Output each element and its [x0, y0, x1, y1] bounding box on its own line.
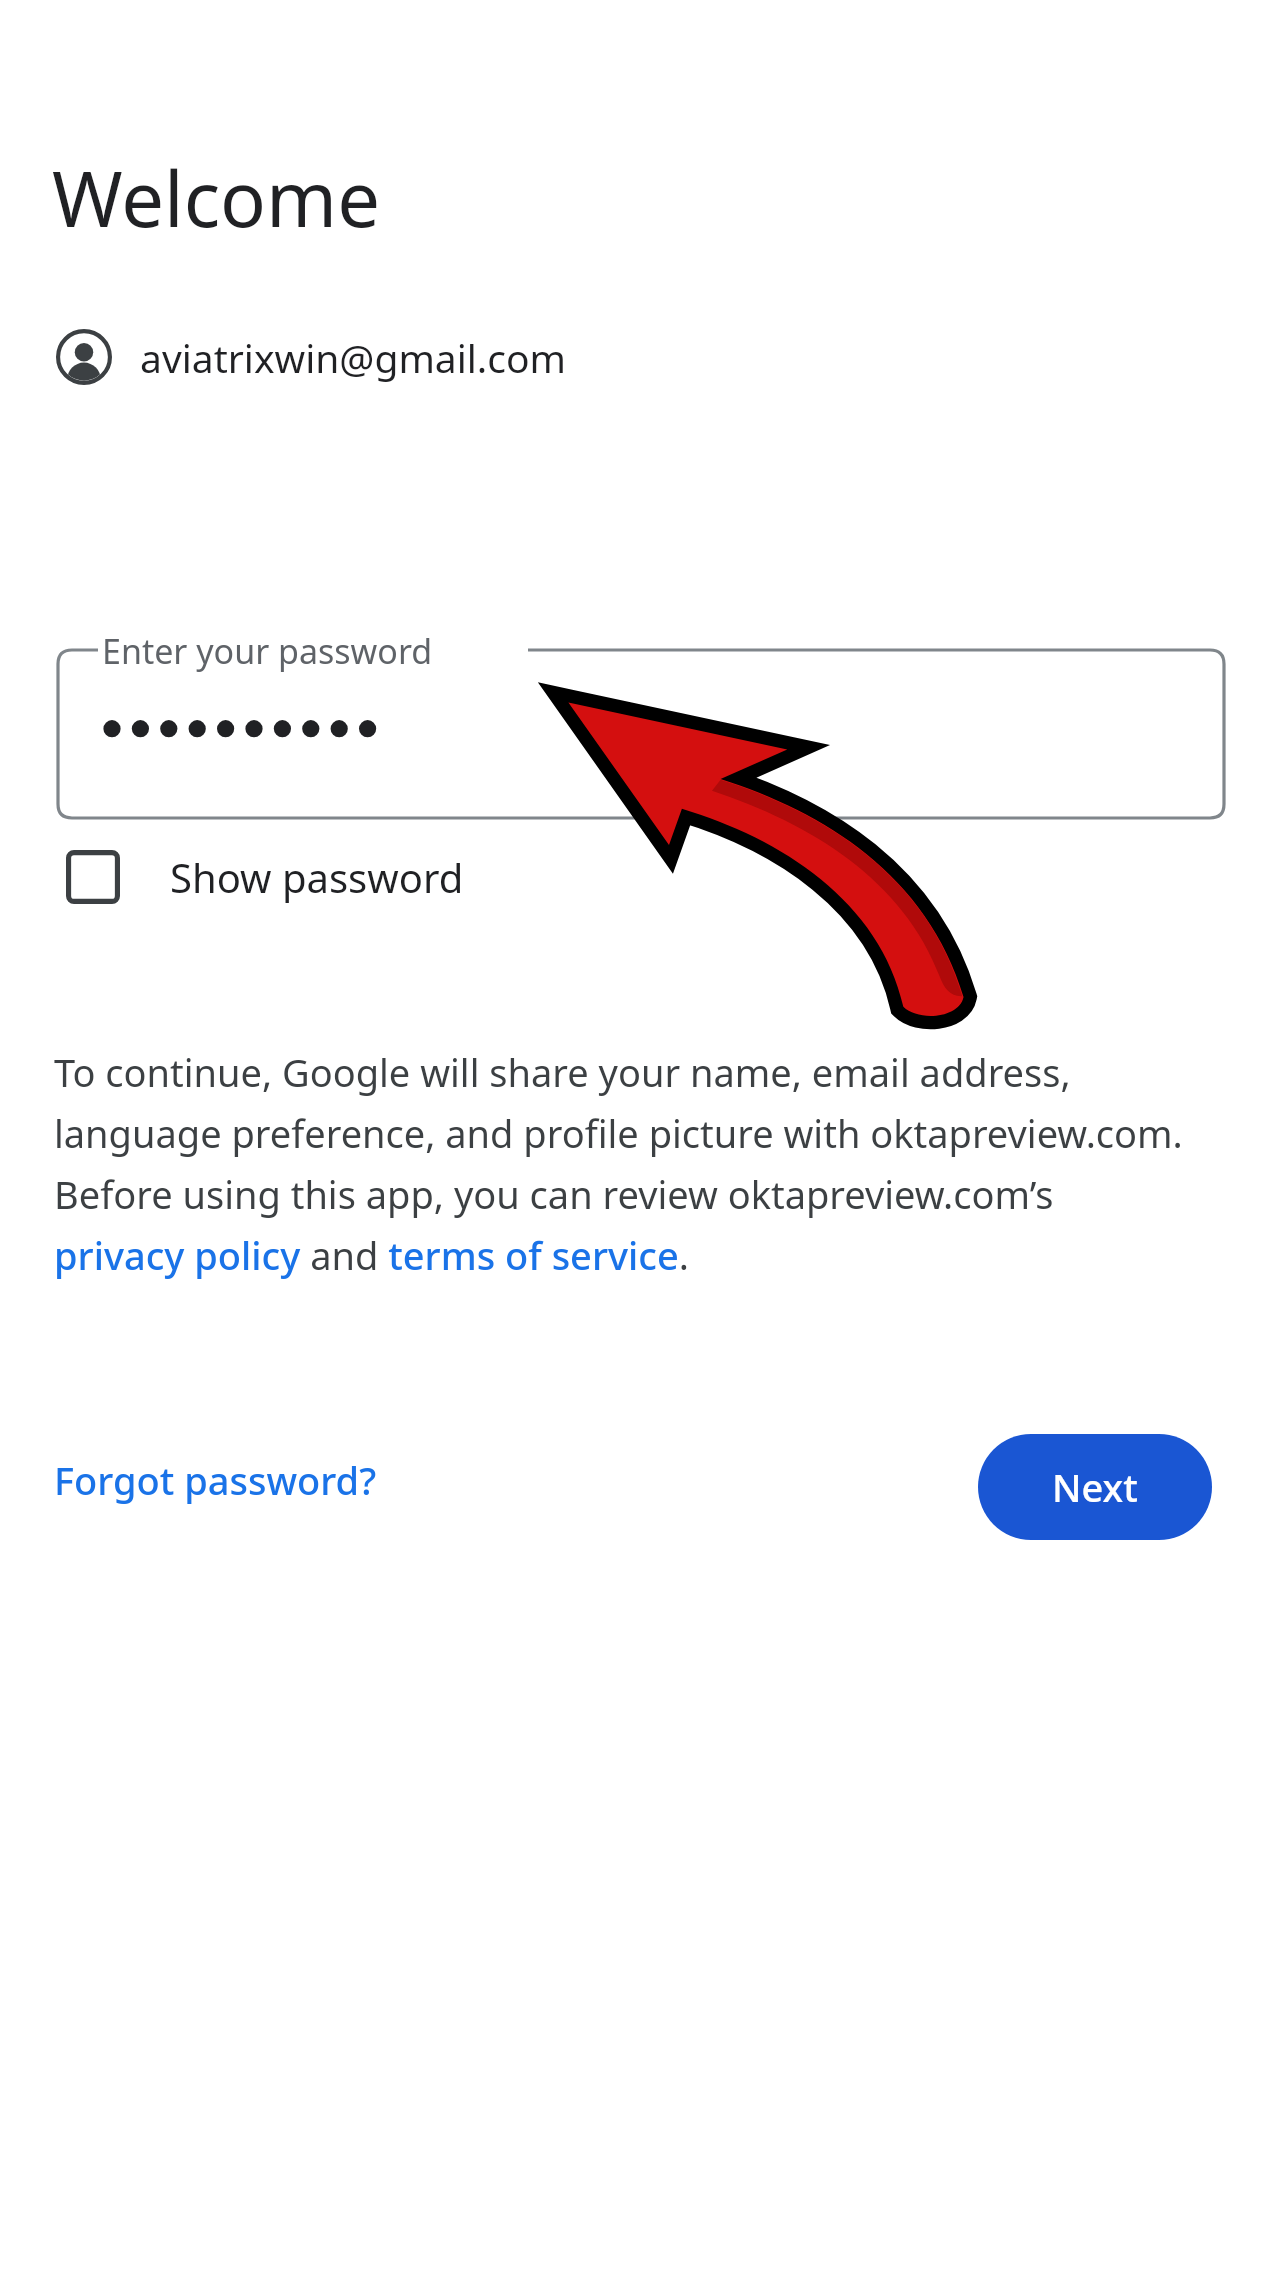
staticText: Show password	[170, 850, 464, 904]
staticText: aviatrixwin@gmail.com	[140, 331, 567, 384]
button[interactable]: Enter your password	[58, 632, 1224, 818]
staticText: Welcome	[52, 146, 381, 250]
staticText: Enter your password	[102, 628, 433, 674]
button[interactable]: Account	[52, 325, 571, 389]
staticText: Forgot password?	[54, 1454, 377, 1506]
staticText: To continue, Google will share your name…	[54, 1046, 1184, 1281]
other: Show password	[66, 850, 120, 904]
button[interactable]: Show password	[52, 840, 484, 914]
button[interactable]: Forgot password?	[40, 1440, 391, 1520]
button[interactable]: Next	[978, 1434, 1212, 1540]
other: Account	[56, 329, 112, 385]
staticText: Next	[1052, 1461, 1138, 1513]
other: Annotation arrow	[540, 690, 970, 1020]
